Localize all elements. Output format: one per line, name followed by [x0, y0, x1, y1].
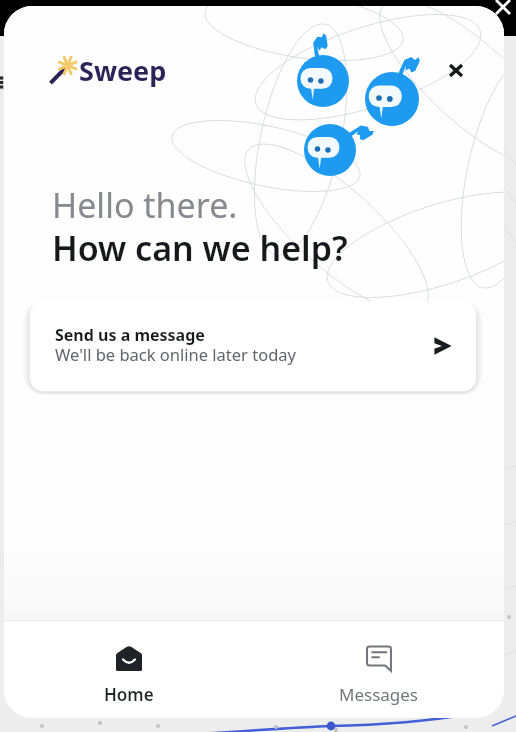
staticText: Home: [104, 683, 154, 706]
button[interactable]: Messages: [254, 621, 504, 718]
button[interactable]: Home: [4, 621, 254, 718]
button[interactable]: Close chat: [487, 0, 516, 23]
button[interactable]: Send us a message: [30, 301, 476, 391]
button[interactable]: Dismiss: [436, 50, 476, 90]
staticText: Messages: [339, 683, 419, 706]
staticText: How can we help?: [52, 225, 348, 271]
staticText: Sweep: [79, 52, 167, 89]
staticText: We'll be back online later today: [55, 343, 296, 365]
staticText: Send us a message: [55, 324, 205, 346]
staticText: Hello there.: [52, 182, 238, 228]
